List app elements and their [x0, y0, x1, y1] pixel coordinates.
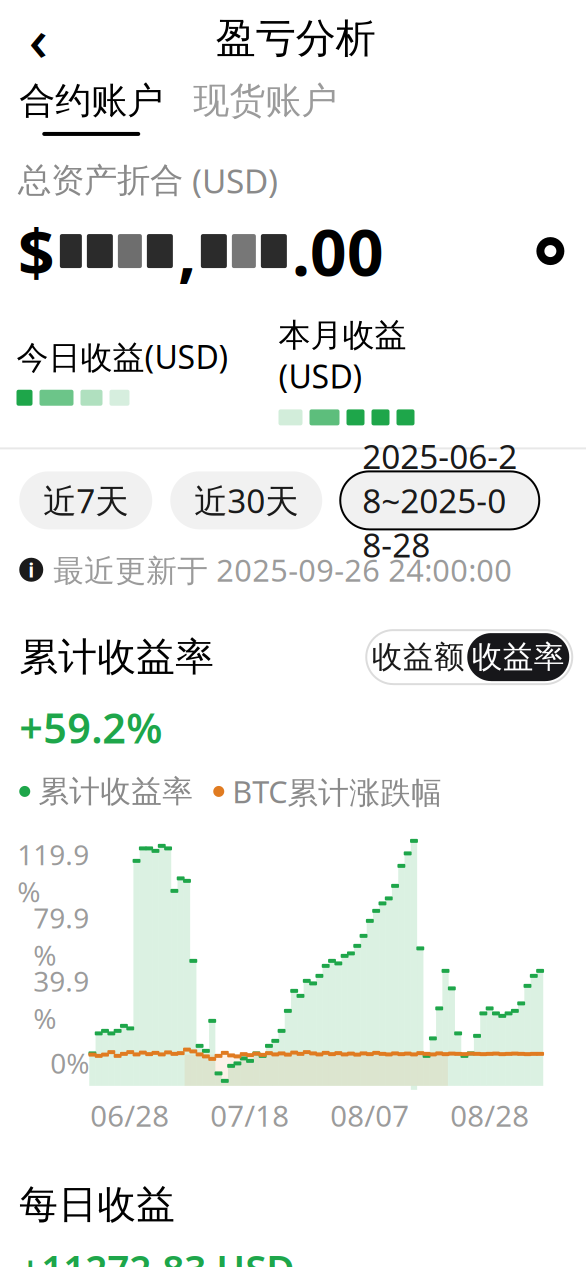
button[interactable]: 合约账户	[19, 79, 163, 136]
staticText: 每日收益	[19, 1181, 175, 1228]
staticText: 总资产折合	[18, 160, 183, 201]
staticText: 近30天	[194, 478, 298, 522]
staticText: +11272.83 USD	[19, 1242, 294, 1267]
staticText: +59.2%	[19, 700, 162, 755]
staticText: (USD)	[183, 158, 278, 203]
staticText: 收益额	[372, 638, 465, 676]
staticText: 07/18	[210, 1096, 289, 1135]
staticText: 本月收益(USD)	[278, 316, 406, 397]
staticText: ,	[178, 209, 196, 294]
staticText: 合约账户	[19, 79, 163, 123]
staticText: 119.9%	[17, 836, 89, 910]
button[interactable]: Hide balance	[524, 225, 576, 277]
staticText: 06/28	[90, 1096, 169, 1135]
button[interactable]: 近30天	[170, 471, 322, 529]
staticText: $	[18, 209, 55, 294]
staticText: 盈亏分析	[216, 14, 376, 63]
staticText: .00	[292, 209, 384, 294]
staticText: 今日收益(USD)	[16, 335, 228, 378]
button[interactable]: 近7天	[19, 471, 152, 529]
staticText: 0%	[50, 1044, 89, 1081]
staticText: 08/28	[450, 1096, 529, 1135]
button[interactable]: 收益额	[369, 634, 467, 680]
staticText: 08/07	[330, 1096, 409, 1135]
staticText: 现货账户	[193, 79, 337, 123]
staticText: 近7天	[43, 478, 128, 522]
staticText: 39.9%	[33, 962, 89, 1037]
button[interactable]: 2025-06-28~2025-08-28	[340, 471, 539, 529]
button[interactable]: Back	[11, 11, 65, 65]
staticText: 最近更新于 2025-09-26 24:00:00	[53, 549, 512, 590]
staticText: 2025-06-28~2025-08-28	[362, 434, 517, 567]
staticText: 累计收益率	[19, 633, 214, 681]
button[interactable]: 现货账户	[193, 79, 337, 136]
button[interactable]: 收益率	[467, 633, 569, 681]
staticText: i	[28, 556, 34, 583]
staticText: 累计收益率	[38, 773, 193, 810]
staticText: BTC累计涨跌幅	[232, 771, 442, 812]
staticText: 79.9%	[33, 899, 89, 973]
staticText: ‹	[29, 0, 48, 77]
staticText: 收益率	[472, 638, 565, 676]
